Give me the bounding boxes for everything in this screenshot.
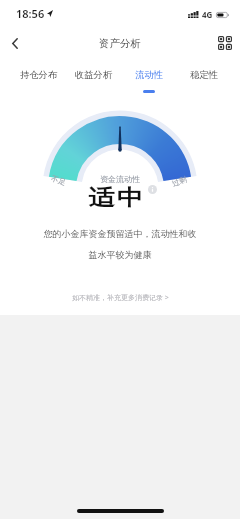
button[interactable]: Back	[0, 28, 30, 58]
staticText: 适中	[87, 184, 145, 211]
button[interactable]: 稳定性	[176, 58, 231, 91]
staticText: 18:56	[16, 6, 45, 21]
staticText: 收益分析	[75, 69, 113, 81]
button[interactable]: 流动性	[121, 58, 176, 91]
button[interactable]: 如不精准，补充更多消费记录 >	[72, 293, 169, 303]
staticText: 持仓分布	[20, 69, 58, 81]
button[interactable]: Scan QR code	[210, 28, 240, 58]
staticText: 过剩	[171, 175, 188, 188]
staticText: 流动性	[135, 69, 163, 81]
button[interactable]: 收益分析	[66, 58, 121, 91]
staticText: 资金流动性	[0, 174, 240, 184]
staticText: 资产分析	[99, 37, 141, 50]
staticText: 稳定性	[190, 69, 218, 81]
staticText: 不足	[50, 174, 67, 187]
button[interactable]: 持仓分布	[12, 58, 66, 91]
button[interactable]: Info	[148, 185, 157, 194]
staticText: 4G	[202, 9, 213, 20]
staticText: 您的小金库资金预留适中，流动性和收 益水平较为健康	[0, 228, 240, 260]
